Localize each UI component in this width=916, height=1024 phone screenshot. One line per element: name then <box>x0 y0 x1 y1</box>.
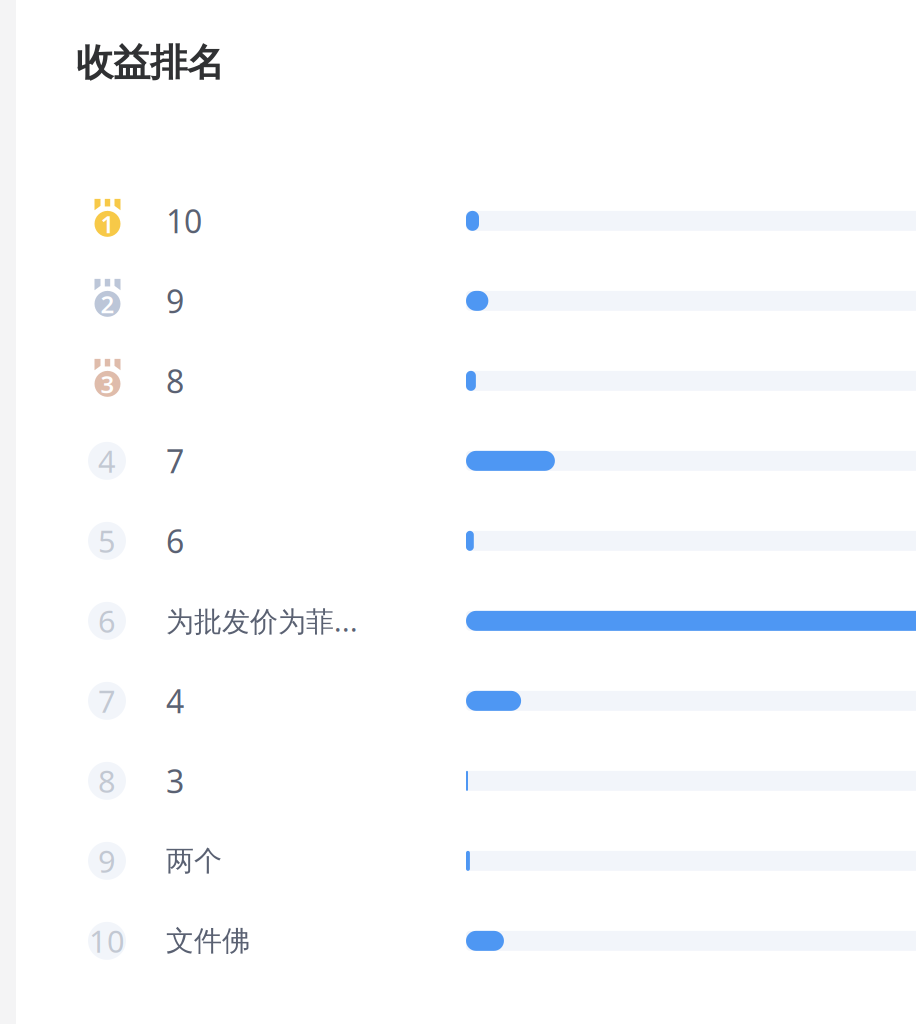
button[interactable]: 第 5 名 6 <box>88 501 916 581</box>
button[interactable]: 第 9 名 两个 <box>88 821 916 901</box>
button[interactable]: 第 1 名 10 <box>88 181 916 261</box>
button[interactable]: 第 4 名 7 <box>88 421 916 501</box>
staticText: 9 <box>98 840 116 881</box>
button[interactable]: 第 3 名 8 <box>88 341 916 421</box>
button[interactable]: 第 2 名 9 <box>88 261 916 341</box>
button[interactable]: 第 7 名 4 <box>88 661 916 741</box>
staticText: 7 <box>98 680 116 721</box>
staticText: 6 <box>166 520 184 562</box>
staticText: 文件佛 <box>166 924 250 958</box>
staticText: 10 <box>89 920 125 961</box>
button[interactable]: 第 6 名 为批发价为菲... <box>88 581 916 661</box>
staticText: 3 <box>166 760 184 802</box>
staticText: 1 <box>100 208 114 240</box>
staticText: 两个 <box>166 844 222 878</box>
staticText: 10 <box>166 200 202 242</box>
staticText: 2 <box>100 288 114 320</box>
staticText: 4 <box>166 680 184 722</box>
button[interactable]: 第 10 名 文件佛 <box>88 901 916 981</box>
staticText: 4 <box>98 440 116 481</box>
staticText: 3 <box>100 368 114 400</box>
button[interactable]: 第 8 名 3 <box>88 741 916 821</box>
staticText: 7 <box>166 440 184 482</box>
staticText: 为批发价为菲... <box>166 602 358 639</box>
staticText: 8 <box>166 360 184 402</box>
staticText: 6 <box>98 600 116 641</box>
staticText: 8 <box>98 760 116 801</box>
staticText: 9 <box>166 280 184 322</box>
staticText: 收益排名 <box>76 40 224 86</box>
staticText: 5 <box>98 520 116 561</box>
